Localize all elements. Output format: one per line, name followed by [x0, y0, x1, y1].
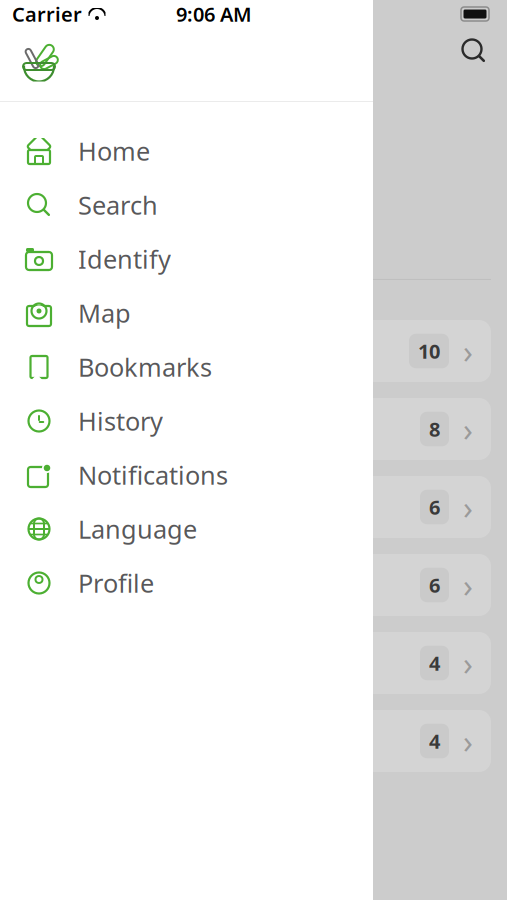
- staticText: ›: [463, 564, 473, 606]
- staticText: ›: [463, 642, 473, 684]
- button[interactable]: Map: [0, 286, 373, 340]
- staticText: ›: [463, 330, 473, 372]
- staticText: ›: [463, 408, 473, 450]
- button[interactable]: Profile: [0, 556, 373, 610]
- staticText: 4: [429, 650, 440, 676]
- staticText: Diagnosis: [20, 82, 240, 142]
- staticText: Map: [78, 296, 131, 330]
- button[interactable]: Home: [0, 124, 373, 178]
- button[interactable]: Language: [0, 502, 373, 556]
- staticText: 4: [429, 728, 440, 754]
- staticText: Search: [78, 188, 158, 222]
- staticText: 10: [418, 338, 440, 364]
- staticText: Carrier: [12, 1, 82, 27]
- staticText: History: [78, 404, 163, 438]
- button[interactable]: Bookmarks: [0, 340, 373, 394]
- button[interactable]: Notifications: [0, 448, 373, 502]
- staticText: Home: [78, 134, 150, 168]
- staticText: Language: [78, 512, 197, 546]
- staticText: Bookmarks: [78, 350, 212, 384]
- button[interactable]: App logo: [0, 39, 64, 89]
- staticText: 6: [429, 572, 440, 598]
- button[interactable]: Search: [0, 178, 373, 232]
- staticText: Notifications: [78, 458, 228, 492]
- staticText: ›: [463, 720, 473, 762]
- staticText: 6: [429, 494, 440, 520]
- button[interactable]: Identify: [0, 232, 373, 286]
- staticText: 9:06 AM: [176, 1, 252, 27]
- staticText: Profile: [78, 566, 154, 600]
- staticText: 8: [429, 416, 440, 442]
- staticText: Identify: [78, 242, 171, 276]
- staticText: ›: [463, 486, 473, 528]
- button[interactable]: History: [0, 394, 373, 448]
